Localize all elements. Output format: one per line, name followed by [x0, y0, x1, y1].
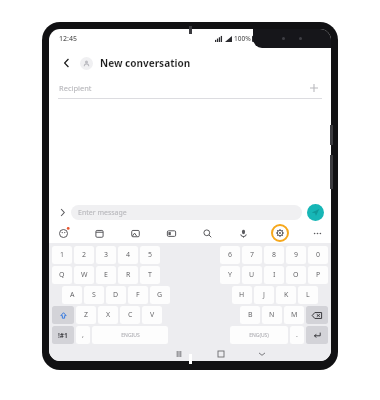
- button[interactable]: Calendar: [91, 225, 107, 241]
- button[interactable]: K: [276, 286, 296, 304]
- button[interactable]: A: [62, 286, 82, 304]
- button[interactable]: J: [254, 286, 274, 304]
- staticText: Z: [84, 310, 89, 320]
- button[interactable]: 2: [74, 246, 94, 264]
- staticText: ENG(US): [249, 332, 269, 339]
- button[interactable]: U: [242, 266, 262, 284]
- button[interactable]: M: [284, 306, 304, 324]
- button[interactable]: I: [264, 266, 284, 284]
- button[interactable]: F: [128, 286, 148, 304]
- button[interactable]: 1: [52, 246, 72, 264]
- staticText: .: [296, 330, 298, 340]
- button[interactable]: Settings: [271, 224, 289, 242]
- button[interactable]: Y: [220, 266, 240, 284]
- button[interactable]: 3: [96, 246, 116, 264]
- button[interactable]: T: [140, 266, 160, 284]
- button[interactable]: Backspace: [306, 306, 328, 324]
- button[interactable]: Z: [76, 306, 96, 324]
- staticText: 8: [272, 250, 277, 260]
- button[interactable]: Gallery: [163, 225, 179, 241]
- button[interactable]: X: [98, 306, 118, 324]
- button[interactable]: S: [84, 286, 104, 304]
- staticText: 12:45: [59, 34, 77, 44]
- button[interactable]: Recents: [173, 348, 185, 360]
- button[interactable]: Stickers: [55, 225, 71, 241]
- button[interactable]: ENGIUS: [92, 326, 168, 344]
- staticText: T: [148, 270, 152, 280]
- staticText: K: [284, 290, 289, 300]
- button[interactable]: D: [106, 286, 126, 304]
- button[interactable]: Home: [215, 348, 227, 360]
- staticText: 6: [228, 250, 233, 260]
- button[interactable]: Send: [307, 204, 324, 221]
- staticText: 9: [294, 250, 299, 260]
- staticText: Y: [228, 270, 232, 280]
- button[interactable]: 4: [118, 246, 138, 264]
- button[interactable]: Expand: [56, 206, 68, 218]
- button[interactable]: O: [286, 266, 306, 284]
- button[interactable]: !#1: [52, 326, 74, 344]
- button[interactable]: Voice: [235, 225, 251, 241]
- staticText: 7: [250, 250, 255, 260]
- staticText: ENGIUS: [121, 332, 140, 339]
- staticText: G: [157, 290, 163, 300]
- staticText: S: [92, 290, 96, 300]
- button[interactable]: Search: [199, 225, 215, 241]
- staticText: P: [316, 270, 321, 280]
- button[interactable]: Shift: [52, 306, 74, 324]
- button[interactable]: 6: [220, 246, 240, 264]
- button[interactable]: P: [308, 266, 328, 284]
- button[interactable]: ENG(US): [230, 326, 288, 344]
- button[interactable]: G: [150, 286, 170, 304]
- staticText: ,: [82, 330, 84, 340]
- button[interactable]: Hide keyboard: [256, 348, 268, 360]
- staticText: 3: [104, 250, 109, 260]
- staticText: M: [291, 310, 298, 320]
- staticText: R: [126, 270, 131, 280]
- button[interactable]: 5: [140, 246, 160, 264]
- button[interactable]: N: [262, 306, 282, 324]
- staticText: 1: [60, 250, 65, 260]
- button[interactable]: 9: [286, 246, 306, 264]
- staticText: O: [293, 270, 299, 280]
- button[interactable]: R: [118, 266, 138, 284]
- staticText: W: [81, 270, 88, 280]
- staticText: L: [306, 290, 310, 300]
- button[interactable]: 8: [264, 246, 284, 264]
- staticText: Recipient: [59, 83, 307, 93]
- button[interactable]: V: [142, 306, 162, 324]
- staticText: 4: [126, 250, 131, 260]
- staticText: F: [136, 290, 140, 300]
- staticText: I: [273, 270, 276, 280]
- staticText: B: [248, 310, 253, 320]
- button[interactable]: Enter: [306, 326, 328, 344]
- button[interactable]: ,: [76, 326, 90, 344]
- button[interactable]: Back: [59, 55, 75, 71]
- button[interactable]: 7: [242, 246, 262, 264]
- button[interactable]: Add recipient: [307, 81, 321, 95]
- staticText: Q: [59, 270, 65, 280]
- button[interactable]: C: [120, 306, 140, 324]
- button[interactable]: W: [74, 266, 94, 284]
- button[interactable]: .: [290, 326, 304, 344]
- staticText: A: [70, 290, 75, 300]
- button[interactable]: Image: [127, 225, 143, 241]
- button[interactable]: Contact: [80, 57, 93, 70]
- staticText: J: [263, 290, 265, 300]
- button[interactable]: B: [240, 306, 260, 324]
- staticText: 0: [316, 250, 321, 260]
- staticText: C: [128, 310, 133, 320]
- staticText: !#1: [58, 331, 68, 340]
- staticText: 2: [82, 250, 87, 260]
- button[interactable]: H: [232, 286, 252, 304]
- button[interactable]: E: [96, 266, 116, 284]
- staticText: New conversation: [100, 56, 191, 70]
- staticText: V: [150, 310, 155, 320]
- button[interactable]: 0: [308, 246, 328, 264]
- button[interactable]: L: [298, 286, 318, 304]
- staticText: Enter message: [78, 208, 127, 218]
- button[interactable]: Q: [52, 266, 72, 284]
- button[interactable]: Enter message: [71, 205, 302, 220]
- button[interactable]: More options: [309, 225, 325, 241]
- staticText: 5: [148, 250, 153, 260]
